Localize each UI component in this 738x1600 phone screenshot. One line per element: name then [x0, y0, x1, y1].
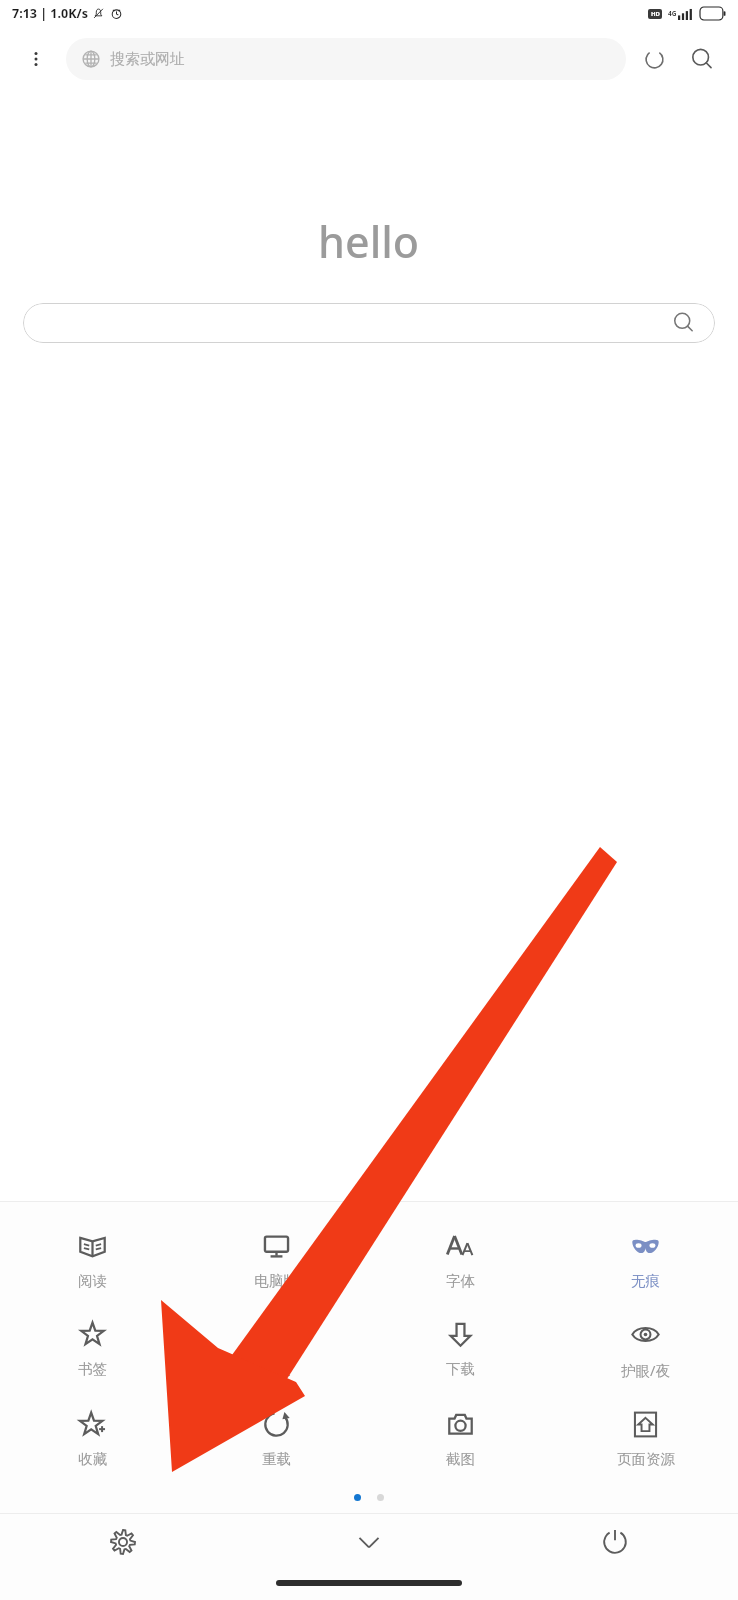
staticText: 4G	[668, 9, 677, 18]
button[interactable]: 书签	[0, 1312, 184, 1384]
staticText: 电脑版	[254, 1272, 298, 1290]
button[interactable]: More options	[14, 37, 58, 81]
button[interactable]: 搜索或网址	[66, 38, 626, 80]
button[interactable]: 无痕	[553, 1224, 738, 1296]
staticText: 阅读	[78, 1272, 107, 1290]
staticText: 截图	[446, 1450, 475, 1468]
staticText: 无痕	[631, 1272, 660, 1290]
staticText: 页面资源	[617, 1450, 675, 1468]
button[interactable]: 护眼/夜	[553, 1312, 738, 1386]
button[interactable]: 下载	[368, 1312, 553, 1384]
button[interactable]: Refresh	[632, 37, 676, 81]
staticText: 收藏	[78, 1450, 107, 1468]
staticText: 字体	[446, 1272, 475, 1290]
button[interactable]: 收藏	[0, 1402, 184, 1474]
button[interactable]: 历史	[184, 1312, 368, 1384]
button[interactable]: Search	[680, 37, 724, 81]
staticText: 护眼/夜	[621, 1360, 670, 1380]
staticText: 搜索或网址	[110, 50, 185, 69]
staticText: HD	[651, 10, 660, 18]
button[interactable]: 字体	[368, 1224, 553, 1296]
staticText: 下载	[446, 1360, 475, 1378]
button[interactable]: 重载	[184, 1402, 368, 1474]
button[interactable]: 页面资源	[553, 1402, 738, 1474]
button[interactable]: Exit	[492, 1514, 738, 1570]
button[interactable]	[23, 303, 715, 343]
staticText: 历史	[262, 1360, 291, 1378]
staticText: 重载	[262, 1450, 291, 1468]
button[interactable]: 电脑版	[184, 1224, 368, 1296]
button[interactable]: Settings	[0, 1514, 246, 1570]
button[interactable]: 阅读	[0, 1224, 184, 1296]
staticText: 7:13 | 1.0K/s	[12, 5, 88, 22]
staticText: 书签	[78, 1360, 107, 1378]
button[interactable]: Collapse menu	[246, 1514, 492, 1570]
staticText: hello	[318, 212, 420, 271]
button[interactable]: 截图	[368, 1402, 553, 1474]
